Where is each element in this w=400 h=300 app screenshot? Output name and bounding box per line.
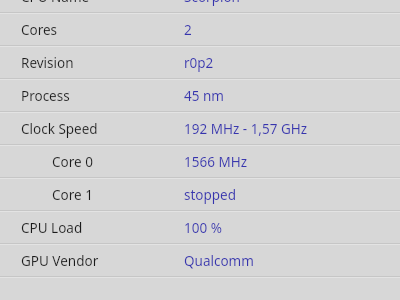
staticText: Revision [21, 54, 74, 72]
button[interactable]: Revision [0, 47, 400, 78]
staticText: GPU Vendor [21, 252, 99, 270]
staticText: r0p2 [184, 54, 214, 72]
button[interactable]: GPU Vendor [0, 245, 400, 276]
button[interactable]: Core 1 [0, 179, 400, 210]
button[interactable]: CPU Name [0, 0, 400, 12]
staticText: Core 0 [52, 153, 93, 171]
staticText: Scorpion [184, 0, 240, 6]
staticText: 45 nm [184, 87, 224, 105]
staticText: Process [21, 87, 70, 105]
staticText: Qualcomm [184, 252, 254, 270]
button[interactable]: CPU Load [0, 212, 400, 243]
button[interactable]: Cores [0, 14, 400, 45]
button[interactable]: Core 0 [0, 146, 400, 177]
staticText: 2 [184, 21, 192, 39]
button[interactable]: Clock Speed [0, 113, 400, 144]
staticText: 100 % [184, 219, 222, 237]
staticText: CPU Name [21, 0, 90, 6]
button[interactable]: Process [0, 80, 400, 111]
staticText: Core 1 [52, 186, 93, 204]
staticText: Clock Speed [21, 120, 98, 138]
staticText: CPU Load [21, 219, 83, 237]
staticText: 192 MHz - 1,57 GHz [184, 120, 308, 138]
staticText: Cores [21, 21, 58, 39]
staticText: stopped [184, 186, 237, 204]
staticText: 1566 MHz [184, 153, 247, 171]
